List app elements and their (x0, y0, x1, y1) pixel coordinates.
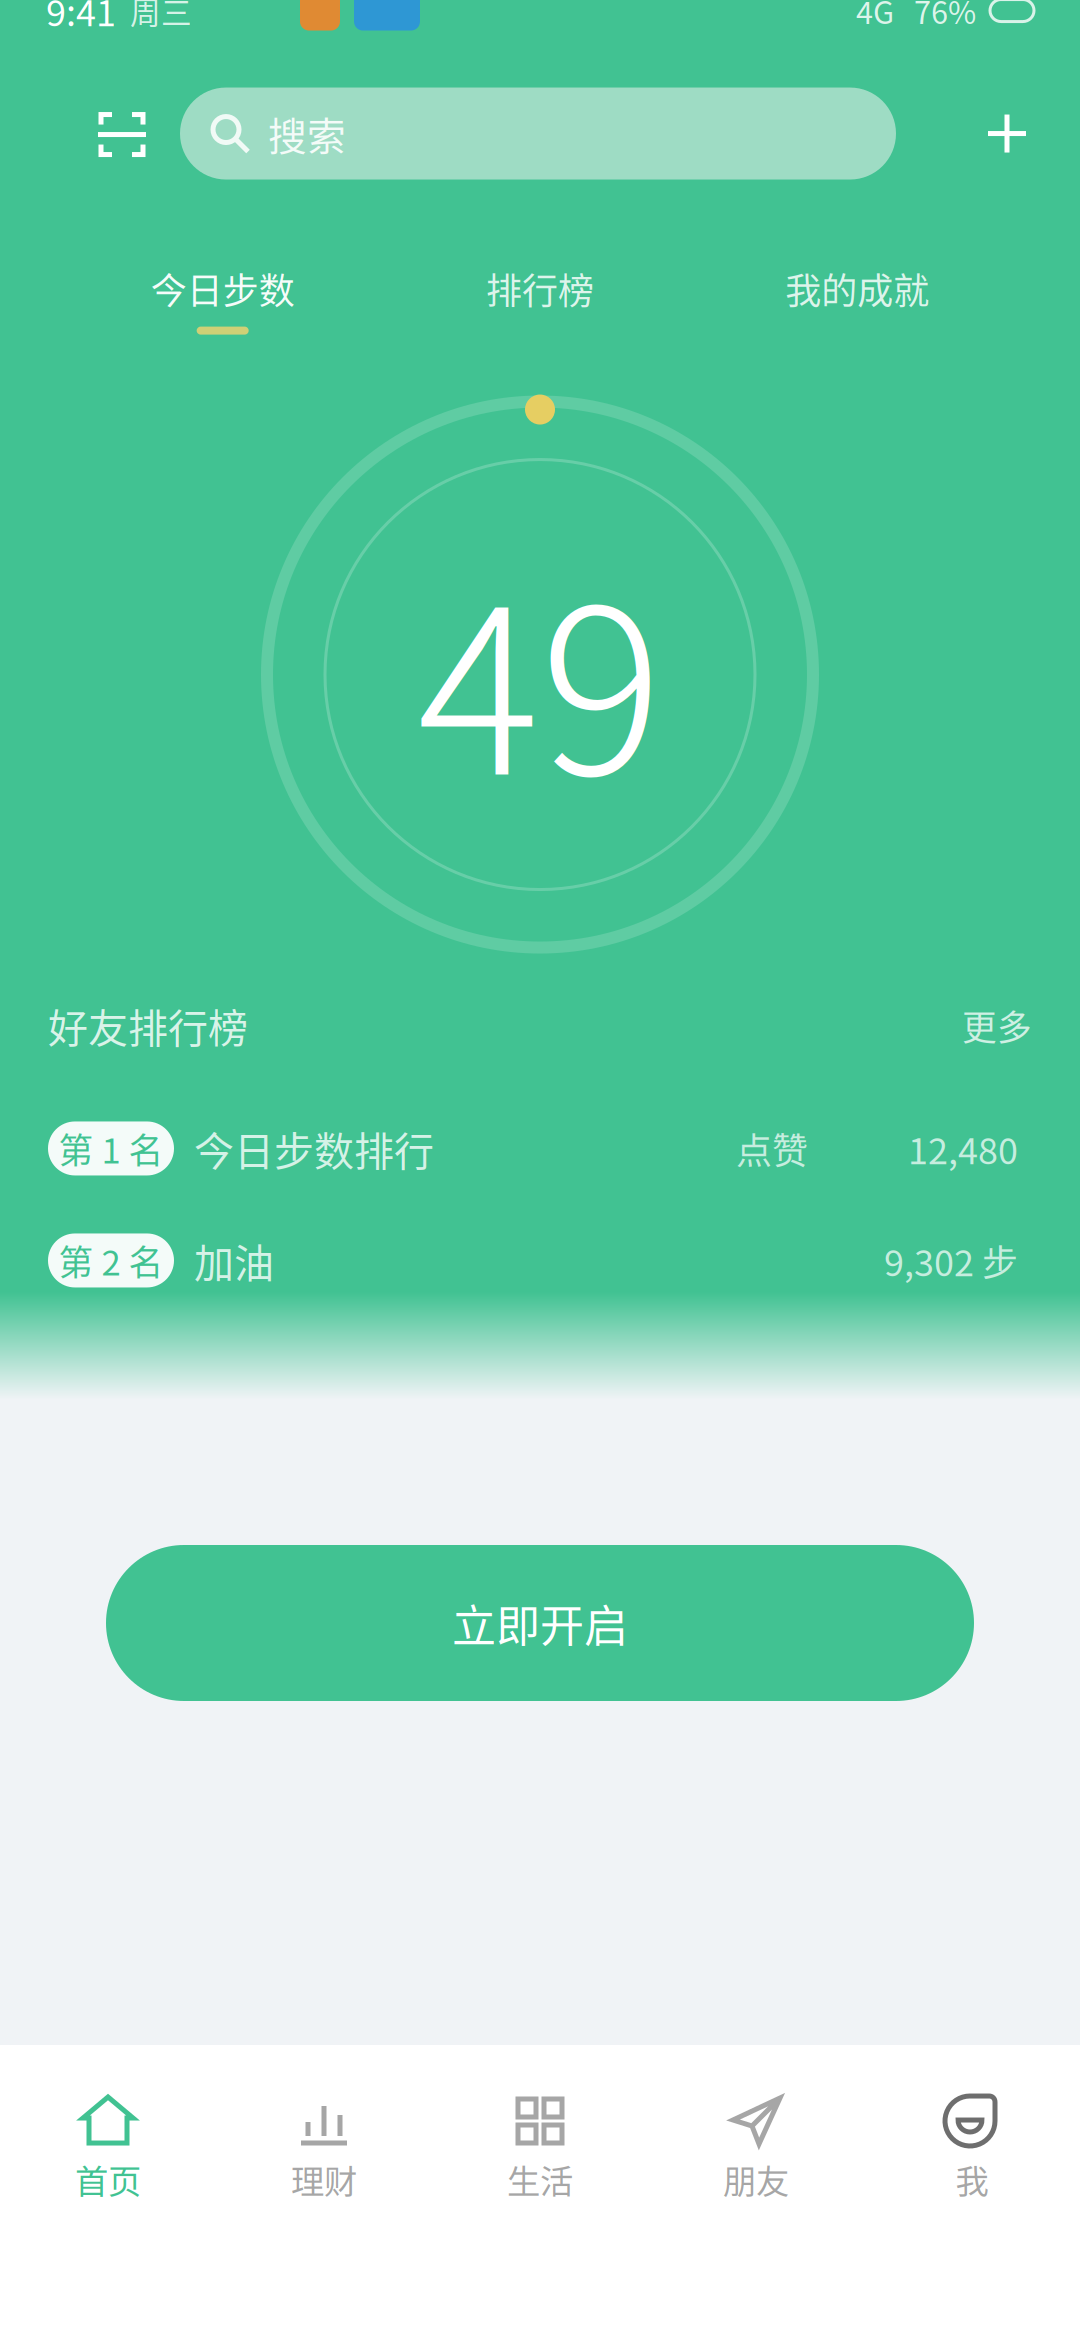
staticText: 49 (417, 508, 663, 841)
staticText: 好友排行榜 (48, 996, 248, 1054)
staticText: 9:41 (46, 0, 116, 37)
staticText: 周三 (130, 0, 192, 33)
button[interactable]: Scan (64, 88, 180, 178)
button[interactable]: 生活 (432, 2045, 648, 2250)
button[interactable]: 理财 (216, 2045, 432, 2250)
button[interactable]: Add (962, 88, 1052, 178)
staticText: 我的成就 (785, 262, 929, 315)
staticText: 第 2 名 (58, 1235, 163, 1286)
staticText: 第 1 名 (58, 1123, 163, 1174)
staticText: 生活 (507, 2155, 573, 2203)
staticText: 点赞 (736, 1122, 808, 1174)
staticText: 今日步数排行 (194, 1119, 434, 1177)
staticText: 排行榜 (486, 262, 594, 315)
staticText: 首页 (75, 2155, 141, 2203)
staticText: 我 (955, 2155, 988, 2203)
staticText: 9,302 步 (884, 1234, 1018, 1286)
staticText: 搜索 (268, 105, 346, 161)
button[interactable]: 朋友 (648, 2045, 864, 2250)
staticText: 更多 (962, 1000, 1032, 1051)
staticText: 立即开启 (452, 1591, 628, 1655)
staticText: 加油 (194, 1231, 274, 1289)
staticText: 12,480 (908, 1122, 1018, 1174)
staticText: 理财 (291, 2155, 357, 2203)
staticText: 76% (914, 0, 976, 33)
button[interactable]: 排行榜 (381, 259, 699, 337)
staticText: 4G (856, 0, 894, 33)
staticText: 朋友 (723, 2155, 789, 2203)
button[interactable]: 我的成就 (699, 259, 1016, 337)
button[interactable]: 第 2 名 (0, 1204, 1080, 1316)
button[interactable]: 第 1 名 (0, 1092, 1080, 1204)
staticText: 今日步数 (151, 262, 295, 315)
button[interactable]: 今日步数 (64, 259, 381, 337)
button[interactable]: 首页 (0, 2045, 216, 2250)
button[interactable]: 我 (864, 2045, 1080, 2250)
button[interactable]: 更多 (962, 1000, 1032, 1051)
button[interactable]: 立即开启 (106, 1545, 974, 1701)
